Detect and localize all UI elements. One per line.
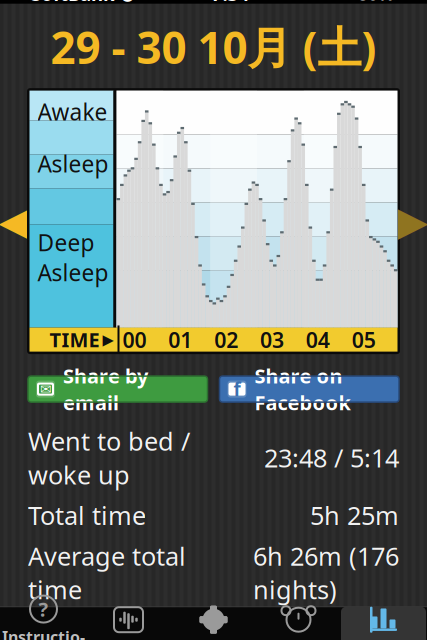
staticText: 01 xyxy=(168,325,192,354)
staticText: ◀ xyxy=(0,198,29,244)
staticText: TIME xyxy=(49,326,99,353)
staticText: ▶ xyxy=(397,198,427,244)
button[interactable]: Settings xyxy=(171,607,256,640)
staticText: Went to bed / woke up xyxy=(28,424,190,491)
staticText: 02 xyxy=(214,325,238,354)
staticText: Asleep xyxy=(37,149,108,179)
staticText: Share on Facebook xyxy=(254,363,350,416)
staticText: SoftBank xyxy=(31,0,115,6)
staticText: 7:34 xyxy=(211,0,249,6)
staticText: Total time xyxy=(28,498,146,532)
button[interactable]: Next night xyxy=(400,198,426,244)
staticText: ? xyxy=(38,596,48,622)
staticText: ✉ xyxy=(40,381,51,397)
staticText: Average total time xyxy=(28,539,186,606)
staticText: ▶ xyxy=(102,331,113,348)
staticText: 05 xyxy=(352,325,376,354)
staticText: 23:48 / 5:14 xyxy=(264,441,399,474)
button[interactable]: Alarm xyxy=(256,607,341,640)
button[interactable]: ✉ xyxy=(28,376,207,402)
button[interactable]: Previous night xyxy=(1,198,27,244)
staticText: Share by email xyxy=(63,363,148,416)
button[interactable]: f xyxy=(219,376,399,402)
staticText: 5h 25m xyxy=(310,498,399,532)
staticText: f xyxy=(233,377,240,401)
staticText: 04 xyxy=(306,325,330,354)
staticText: Asleep xyxy=(37,257,108,288)
staticText: 80% xyxy=(358,0,394,5)
staticText: 03 xyxy=(260,325,284,354)
staticText: 29 - 30 10月 (土) xyxy=(50,18,376,76)
staticText: Instructions xyxy=(2,626,85,640)
staticText: Deep xyxy=(37,227,94,257)
staticText: ● xyxy=(120,0,135,3)
button[interactable]: ? xyxy=(1,607,86,640)
button[interactable]: Test xyxy=(86,607,171,640)
staticText: Awake xyxy=(37,97,107,127)
staticText: 6h 26m (176 nights) xyxy=(253,539,399,606)
staticText: 00 xyxy=(122,325,146,354)
button[interactable]: Statistics xyxy=(341,607,426,640)
